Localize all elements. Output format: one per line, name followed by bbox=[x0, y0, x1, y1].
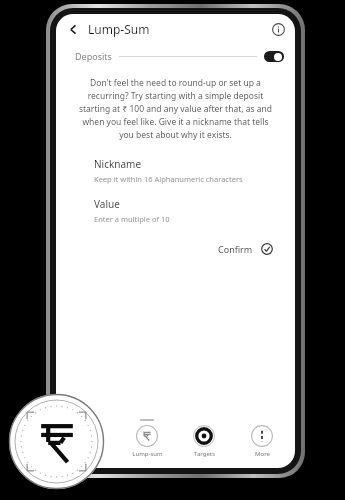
button[interactable]: Info bbox=[267, 18, 289, 40]
button[interactable]: More bbox=[237, 416, 287, 464]
staticText: Enter a multiple of 10 bbox=[94, 214, 170, 224]
button[interactable]: Recurring bbox=[64, 416, 114, 464]
button[interactable]: Deposits bbox=[75, 44, 284, 68]
button[interactable]: Confirm bbox=[214, 240, 277, 258]
staticText: Nickname bbox=[94, 157, 142, 171]
staticText: Don't feel the need to round-up or set u… bbox=[76, 77, 275, 141]
staticText: Targets bbox=[194, 450, 215, 458]
staticText: Confirm bbox=[218, 243, 253, 255]
button[interactable]: Targets bbox=[179, 416, 229, 464]
staticText: Lump-sum bbox=[132, 450, 163, 458]
staticText: Keep it within 16 Alphanumeric character… bbox=[94, 174, 243, 184]
button[interactable]: Lump-sum bbox=[122, 416, 172, 464]
staticText: Lump-Sum bbox=[88, 21, 150, 37]
button[interactable]: Rupee coin logo bbox=[8, 393, 105, 490]
button[interactable]: Back bbox=[62, 18, 84, 40]
staticText: Value bbox=[94, 197, 120, 211]
staticText: More bbox=[255, 450, 270, 458]
staticText: Recurring bbox=[75, 450, 103, 458]
staticText: Deposits bbox=[75, 50, 112, 62]
